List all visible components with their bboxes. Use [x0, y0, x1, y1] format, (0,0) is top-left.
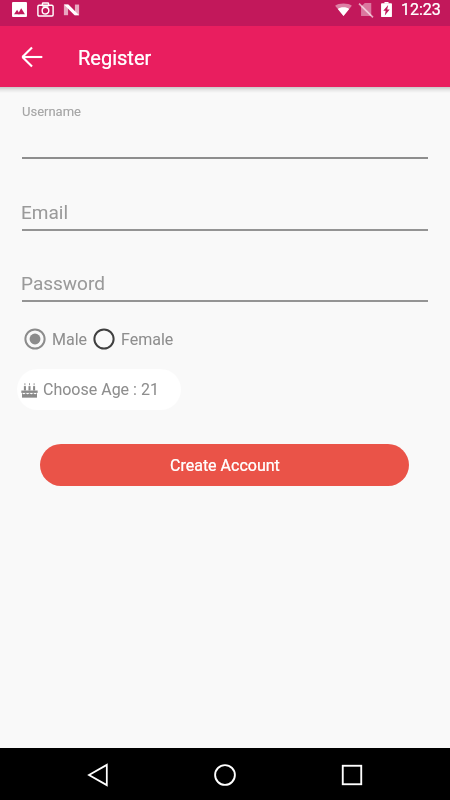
staticText: 12:23 — [401, 0, 441, 19]
staticText: Email — [21, 201, 69, 223]
button[interactable]: Create Account — [40, 444, 409, 486]
button[interactable]: Male — [22, 326, 88, 352]
staticText: Register — [78, 46, 152, 69]
button[interactable]: Home — [201, 751, 249, 799]
staticText: Choose Age : 21 — [43, 380, 159, 399]
staticText: Male — [52, 330, 88, 349]
staticText: Username — [22, 104, 81, 119]
button[interactable]: Recents — [328, 751, 376, 799]
button[interactable]: Female — [91, 326, 174, 352]
button[interactable]: Back — [12, 37, 52, 77]
staticText: Female — [121, 330, 174, 349]
button[interactable]: Choose Age : 21 — [17, 369, 181, 410]
staticText: Password — [21, 272, 105, 294]
button[interactable]: Back — [74, 751, 122, 799]
staticText: Create Account — [170, 456, 280, 475]
